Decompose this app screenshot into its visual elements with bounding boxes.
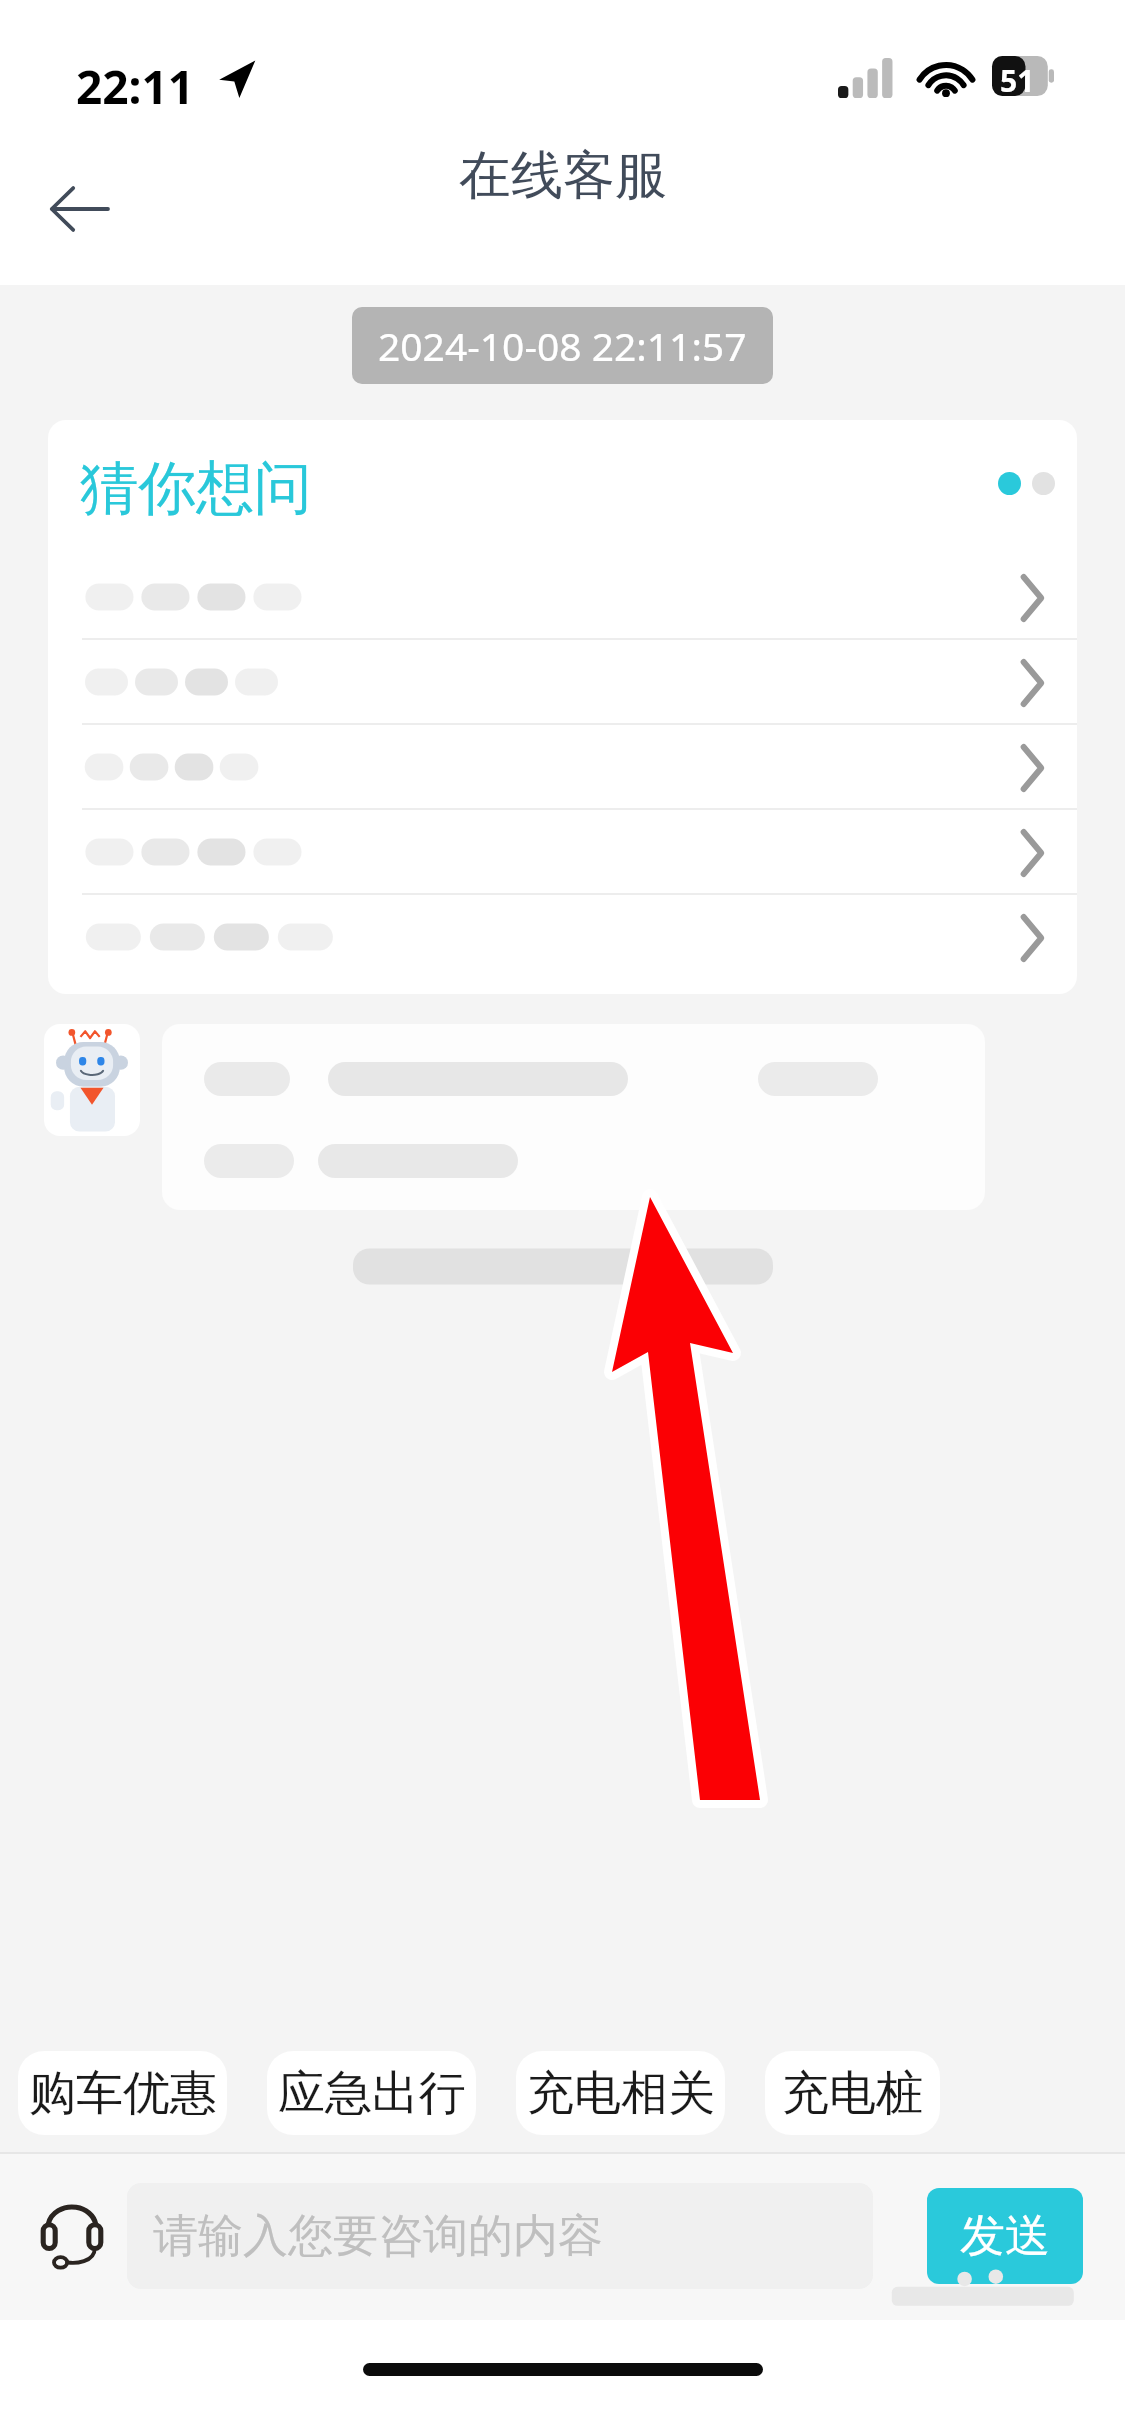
staticText: 2024-10-08 22:11:57 — [378, 319, 747, 372]
button[interactable]: 充电相关 — [516, 2051, 725, 2135]
button[interactable] — [48, 725, 1077, 810]
staticText: 充电相关 — [527, 2064, 715, 2123]
button[interactable]: 返回 — [30, 160, 128, 258]
staticText: 应急出行 — [278, 2064, 466, 2123]
button[interactable]: 购车优惠 — [18, 2051, 227, 2135]
button[interactable] — [48, 555, 1077, 640]
button[interactable] — [48, 640, 1077, 725]
button[interactable]: 充电桩 — [765, 2051, 940, 2135]
staticText: 充电桩 — [782, 2064, 923, 2123]
staticText: 购车优惠 — [29, 2064, 217, 2123]
staticText: 51 — [1000, 60, 1035, 101]
staticText: 猜你想问 — [80, 452, 312, 525]
button[interactable] — [48, 810, 1077, 895]
button[interactable]: 人工客服 — [22, 2186, 122, 2286]
staticText: 在线客服 — [459, 143, 667, 209]
button[interactable] — [48, 895, 1077, 980]
button[interactable]: 请输入您要咨询的内容 — [127, 2183, 873, 2289]
staticText: 发送 — [960, 2208, 1050, 2265]
button[interactable]: 应急出行 — [267, 2051, 476, 2135]
staticText: 请输入您要咨询的内容 — [153, 2208, 603, 2265]
button[interactable]: 发送 — [927, 2188, 1083, 2284]
staticText: 22:11 — [76, 55, 195, 118]
